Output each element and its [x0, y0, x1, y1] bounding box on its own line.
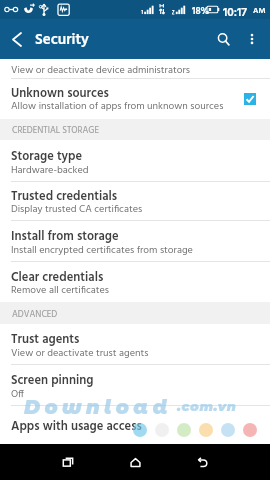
- staticText: .com.vn: [177, 398, 237, 414]
- staticText: Hardware-backed: [11, 162, 89, 178]
- staticText: Security: [35, 28, 89, 52]
- staticText: 10:17: [223, 3, 247, 22]
- staticText: CREDENTIAL STORAGE: [12, 124, 99, 138]
- staticText: Screen pinning: [11, 371, 94, 391]
- staticText: Trusted credentials: [11, 187, 118, 207]
- button[interactable]: Storage type: [0, 140, 270, 182]
- button[interactable]: Trust agents: [0, 324, 270, 365]
- staticText: View or deactivate trust agents: [11, 345, 149, 361]
- staticText: Unknown sources: [11, 84, 109, 104]
- staticText: Install encrypted certificates from stor…: [11, 242, 193, 258]
- button[interactable]: Search: [206, 22, 240, 56]
- button[interactable]: Apps with usage access: [0, 406, 270, 445]
- staticText: Trust agents: [11, 330, 80, 350]
- staticText: Storage type: [11, 147, 83, 167]
- button[interactable]: Recent apps: [52, 446, 84, 478]
- staticText: 18%: [192, 4, 210, 19]
- button[interactable]: Screen pinning: [0, 365, 270, 406]
- staticText: AM: [253, 5, 266, 18]
- staticText: Remove all certificates: [11, 282, 110, 298]
- button[interactable]: Back: [186, 446, 218, 478]
- staticText: Off: [11, 386, 25, 402]
- button[interactable]: Unknown sources: [0, 79, 270, 119]
- button[interactable]: Navigate up: [0, 22, 34, 56]
- button[interactable]: Clear credentials: [0, 262, 270, 302]
- staticText: Install from storage: [11, 227, 119, 247]
- button[interactable]: More options: [237, 24, 267, 54]
- staticText: Download: [24, 395, 172, 419]
- staticText: View or deactivate device administrators: [11, 62, 190, 78]
- button[interactable]: View or deactivate device administrators: [0, 59, 270, 79]
- button[interactable]: Install from storage: [0, 221, 270, 262]
- button[interactable]: Home: [119, 446, 151, 478]
- button[interactable]: Trusted credentials: [0, 181, 270, 221]
- staticText: ADVANCED: [12, 308, 58, 322]
- staticText: Clear credentials: [11, 268, 104, 288]
- staticText: Allow installation of apps from unknown …: [11, 98, 224, 114]
- staticText: Display trusted CA certificates: [11, 201, 143, 217]
- staticText: Apps with usage access: [11, 417, 142, 437]
